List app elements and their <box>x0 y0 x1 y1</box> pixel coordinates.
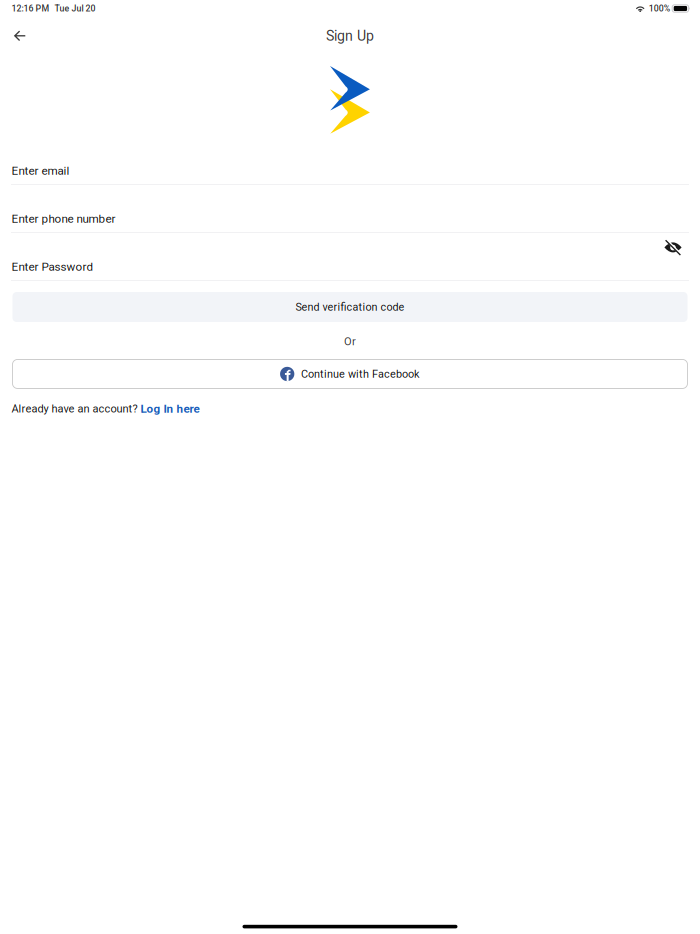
button[interactable]: Enter phone number <box>0 185 700 233</box>
button[interactable]: Enter email <box>0 137 700 185</box>
staticText: Continue with Facebook <box>301 368 420 380</box>
staticText: Send verification code <box>295 301 404 313</box>
staticText: Tue Jul 20 <box>54 3 95 14</box>
staticText: Log In here <box>140 402 199 416</box>
button[interactable]: Show password <box>659 235 687 260</box>
staticText: 12:16 PM <box>11 3 49 14</box>
staticText: Enter email <box>11 164 69 177</box>
staticText: Already have an account? <box>11 402 140 415</box>
button[interactable]: Enter Password <box>0 233 700 281</box>
staticText: Or <box>344 335 356 348</box>
button[interactable]: Back <box>7 25 33 47</box>
button[interactable]: Log In here <box>140 402 199 416</box>
button[interactable]: Send verification code <box>12 292 687 322</box>
staticText: Sign Up <box>326 28 374 44</box>
staticText: Enter phone number <box>11 212 115 225</box>
staticText: Enter Password <box>11 260 93 273</box>
staticText: 100% <box>649 3 670 14</box>
button[interactable]: Continue with Facebook <box>12 359 687 388</box>
